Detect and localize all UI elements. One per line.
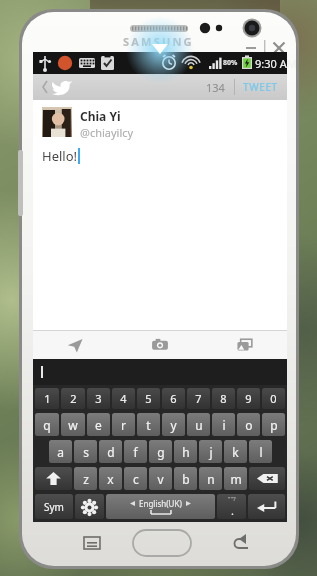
button[interactable]: English(UK) xyxy=(106,494,215,519)
button[interactable]: r xyxy=(112,413,135,436)
staticText: k xyxy=(232,444,239,460)
staticText: e xyxy=(95,417,102,433)
button[interactable]: v xyxy=(149,467,172,490)
staticText: 7 xyxy=(195,391,202,406)
button[interactable]: Key xyxy=(35,467,72,490)
button[interactable]: w xyxy=(61,413,85,436)
button[interactable]: q xyxy=(35,413,59,436)
button[interactable]: Key xyxy=(248,494,285,519)
staticText: m xyxy=(230,471,242,487)
staticText: p xyxy=(270,417,278,433)
staticText: z xyxy=(83,471,89,487)
button[interactable]: 5 xyxy=(137,388,160,409)
staticText: u xyxy=(195,417,203,433)
button[interactable]: m xyxy=(224,467,247,490)
button[interactable]: t xyxy=(137,413,160,436)
button[interactable]: Period xyxy=(217,494,246,519)
button[interactable]: p xyxy=(262,413,285,436)
button[interactable]: z xyxy=(74,467,97,490)
button[interactable]: 8 xyxy=(212,388,235,409)
button[interactable]: n xyxy=(199,467,222,490)
button[interactable]: 4 xyxy=(112,388,135,409)
staticText: y xyxy=(170,417,177,433)
button[interactable]: f xyxy=(124,440,147,463)
button[interactable]: 9 xyxy=(237,388,260,409)
button[interactable]: e xyxy=(87,413,110,436)
button[interactable]: c xyxy=(124,467,147,490)
staticText: i xyxy=(222,417,226,433)
button[interactable]: g xyxy=(149,440,172,463)
button[interactable]: Key xyxy=(75,494,104,519)
button[interactable]: Back xyxy=(38,78,76,96)
button[interactable]: d xyxy=(99,440,122,463)
button[interactable]: Camera xyxy=(117,331,202,359)
staticText: o xyxy=(245,417,253,433)
staticText: v xyxy=(157,471,164,487)
button[interactable]: a xyxy=(49,440,72,463)
button[interactable]: 2 xyxy=(61,388,85,409)
button[interactable]: 0 xyxy=(262,388,285,409)
button[interactable]: b xyxy=(174,467,197,490)
button[interactable]: y xyxy=(162,413,185,436)
staticText: Chia Yi xyxy=(80,108,121,124)
staticText: r xyxy=(121,417,126,433)
button[interactable]: Location xyxy=(33,331,117,359)
staticText: 134 xyxy=(206,80,225,95)
staticText: a xyxy=(57,444,64,460)
staticText: b xyxy=(182,471,190,487)
staticText: f xyxy=(133,444,138,460)
staticText: g xyxy=(157,444,165,460)
button[interactable]: s xyxy=(74,440,97,463)
staticText: x xyxy=(107,471,114,487)
staticText: ""? xyxy=(228,495,236,503)
button[interactable]: k xyxy=(224,440,247,463)
staticText: 8 xyxy=(220,391,227,406)
staticText: t xyxy=(146,417,151,433)
staticText: j xyxy=(209,444,213,460)
staticText: d xyxy=(107,444,115,460)
staticText: 0 xyxy=(270,391,277,406)
button[interactable]: l xyxy=(249,440,272,463)
button[interactable]: o xyxy=(237,413,260,436)
staticText: Sym xyxy=(44,500,64,514)
staticText: @chiayilcy xyxy=(80,125,134,140)
staticText: 6 xyxy=(170,391,177,406)
staticText: SAMSUNG xyxy=(123,34,194,49)
staticText: English(UK) xyxy=(139,498,182,509)
button[interactable]: h xyxy=(174,440,197,463)
staticText: n xyxy=(207,471,215,487)
staticText: 9:30 AM xyxy=(255,56,297,71)
staticText: . xyxy=(231,503,234,518)
button[interactable]: 6 xyxy=(162,388,185,409)
staticText: 1 xyxy=(44,391,51,406)
button[interactable]: x xyxy=(99,467,122,490)
staticText: s xyxy=(83,444,89,460)
staticText: TWEET xyxy=(243,80,278,94)
staticText: c xyxy=(133,471,139,487)
button[interactable]: u xyxy=(187,413,210,436)
staticText: 5 xyxy=(145,391,152,406)
button[interactable]: 7 xyxy=(187,388,210,409)
button[interactable]: i xyxy=(212,413,235,436)
button[interactable]: 3 xyxy=(87,388,110,409)
button[interactable]: 1 xyxy=(35,388,59,409)
button[interactable]: TWEET xyxy=(234,74,287,100)
staticText: 2 xyxy=(70,391,77,406)
staticText: l xyxy=(259,444,263,460)
staticText: 4 xyxy=(120,391,127,406)
staticText: h xyxy=(182,444,190,460)
button[interactable]: Gallery xyxy=(202,331,287,359)
staticText: q xyxy=(43,417,51,433)
staticText: w xyxy=(68,417,78,433)
staticText: 9 xyxy=(245,391,252,406)
button[interactable]: Key xyxy=(249,467,285,490)
staticText: Hello! xyxy=(42,147,78,165)
staticText: 3 xyxy=(95,391,102,406)
button[interactable]: Sym xyxy=(35,494,73,519)
staticText: 80% xyxy=(223,58,238,68)
button[interactable]: j xyxy=(199,440,222,463)
